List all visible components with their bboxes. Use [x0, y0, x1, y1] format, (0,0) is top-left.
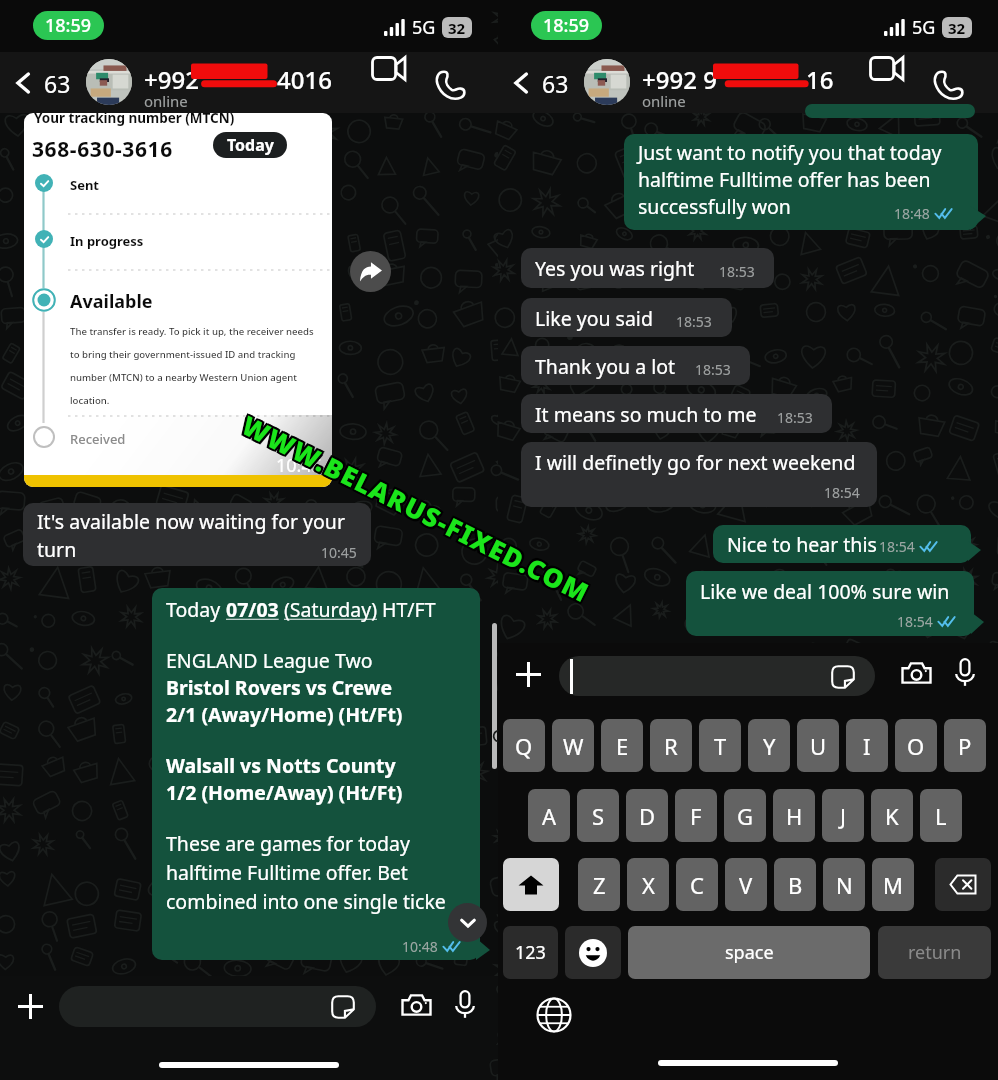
button[interactable]: Back: [504, 66, 538, 100]
button[interactable]: H: [773, 789, 815, 842]
button[interactable]: Profile photo: [86, 59, 132, 105]
button[interactable]: Voice call: [432, 67, 468, 103]
button[interactable]: M: [872, 858, 914, 911]
staticText: WWW.BELARUS-FIXED.COM: [235, 404, 595, 607]
button[interactable]: Camera: [901, 661, 932, 685]
staticText: X: [642, 870, 655, 900]
button[interactable]: Just want to notify you that today halft…: [624, 134, 978, 230]
button[interactable]: Voice call: [930, 67, 966, 103]
button[interactable]: K: [871, 789, 913, 842]
staticText: T: [714, 731, 727, 761]
button[interactable]: Camera: [401, 993, 432, 1017]
staticText: 32: [448, 18, 466, 38]
button[interactable]: Like we deal 100% sure win: [686, 571, 974, 636]
button[interactable]: Nice to hear this: [713, 525, 971, 563]
staticText: 10:45: [321, 543, 357, 562]
button[interactable]: [559, 656, 875, 696]
staticText: 18:53: [676, 312, 712, 331]
staticText: return: [908, 940, 962, 965]
button[interactable]: Voice message: [455, 990, 475, 1019]
button[interactable]: C: [676, 858, 718, 911]
button[interactable]: Y: [748, 719, 790, 772]
staticText: J: [840, 801, 847, 831]
button[interactable]: Today: [152, 588, 480, 960]
staticText: I will definetly go for next weekend: [535, 449, 856, 476]
staticText: Q: [515, 731, 533, 761]
staticText: 368-630-3616: [32, 135, 173, 164]
staticText: 18:54: [824, 483, 860, 502]
staticText: N: [836, 870, 853, 900]
staticText: F: [690, 801, 702, 831]
button[interactable]: S: [577, 789, 619, 842]
button[interactable]: G: [724, 789, 766, 842]
button[interactable]: P: [944, 719, 986, 772]
button[interactable]: Your tracking number (MTCN): [24, 113, 332, 487]
staticText: P: [958, 731, 972, 761]
staticText: space: [725, 940, 774, 965]
staticText: 10:48: [402, 937, 438, 956]
button[interactable]: It's available now waiting for your turn: [23, 503, 371, 566]
staticText: Just want to notify you that today halft…: [638, 139, 942, 220]
button[interactable]: I will definetly go for next weekend: [521, 442, 877, 507]
button[interactable]: Attach: [515, 661, 542, 688]
button[interactable]: Change keyboard: [536, 997, 572, 1033]
button[interactable]: Like you said: [521, 298, 732, 337]
button[interactable]: E: [601, 719, 643, 772]
staticText: Sent: [70, 176, 100, 194]
button[interactable]: Back: [6, 66, 40, 100]
staticText: 123: [515, 940, 546, 965]
button[interactable]: Yes you was right: [521, 248, 774, 288]
staticText: +992 9: [642, 63, 717, 96]
button[interactable]: V: [725, 858, 767, 911]
staticText: Y: [763, 731, 776, 761]
button[interactable]: Backspace: [935, 858, 991, 911]
staticText: Like you said: [535, 305, 653, 332]
button[interactable]: 123: [503, 926, 558, 979]
button[interactable]: N: [823, 858, 865, 911]
staticText: U: [810, 731, 827, 761]
button[interactable]: U: [797, 719, 839, 772]
staticText: Received: [70, 430, 126, 448]
button[interactable]: Q: [503, 719, 545, 772]
button[interactable]: D: [626, 789, 668, 842]
button[interactable]: Voice message: [955, 658, 975, 687]
button[interactable]: L: [920, 789, 962, 842]
staticText: 2/1 (Away/Home) (Ht/Ft): [166, 701, 403, 728]
button[interactable]: Shift: [503, 858, 559, 911]
button[interactable]: F: [675, 789, 717, 842]
button[interactable]: Profile photo: [584, 59, 630, 105]
button[interactable]: I: [846, 719, 888, 772]
button[interactable]: return: [878, 926, 991, 979]
button[interactable]: Z: [578, 858, 620, 911]
staticText: I: [863, 731, 871, 761]
staticText: 18:54: [897, 612, 933, 631]
staticText: C: [690, 870, 704, 900]
button[interactable]: Emoji: [565, 926, 621, 979]
button[interactable]: space: [628, 926, 870, 979]
button[interactable]: [59, 986, 376, 1027]
staticText: 07/03: [226, 596, 284, 623]
button[interactable]: B: [774, 858, 816, 911]
button[interactable]: W: [552, 719, 594, 772]
staticText: 18:53: [777, 408, 813, 427]
button[interactable]: It means so much to me: [521, 394, 832, 433]
button[interactable]: Scroll to bottom: [448, 903, 487, 942]
staticText: M: [883, 870, 903, 900]
button[interactable]: J: [822, 789, 864, 842]
staticText: Bristol Rovers vs Crewe: [166, 674, 393, 701]
staticText: Walsall vs Notts County: [166, 752, 396, 779]
staticText: Available: [70, 289, 153, 314]
staticText: 10:45: [276, 453, 323, 478]
button[interactable]: Attach: [17, 993, 44, 1020]
button[interactable]: Forward: [350, 251, 391, 292]
button[interactable]: A: [528, 789, 570, 842]
button[interactable]: Video call: [864, 52, 908, 84]
button[interactable]: Thank you a lot: [521, 346, 750, 385]
staticText: HT/FT: [377, 596, 436, 623]
button[interactable]: T: [699, 719, 741, 772]
button[interactable]: R: [650, 719, 692, 772]
button[interactable]: Today: [213, 132, 287, 158]
button[interactable]: Video call: [366, 52, 410, 84]
button[interactable]: X: [627, 858, 669, 911]
button[interactable]: O: [895, 719, 937, 772]
